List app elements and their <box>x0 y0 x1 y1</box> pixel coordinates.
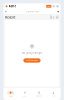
button[interactable]: Search <box>51 5 55 7</box>
staticText: Create project <box>26 60 38 61</box>
button[interactable]: Docs <box>18 89 32 99</box>
button[interactable]: See all <box>50 16 59 19</box>
staticText: Home <box>9 95 13 97</box>
staticText: Docs <box>23 95 27 97</box>
button[interactable]: New <box>46 5 51 8</box>
staticText: You <box>52 95 55 97</box>
button[interactable]: Create project <box>23 58 41 63</box>
button[interactable]: Home <box>3 89 18 99</box>
staticText: No projects yet <box>21 51 42 55</box>
staticText: Acme <box>9 4 17 8</box>
button[interactable]: Account <box>55 5 59 7</box>
staticText: Recent <box>5 16 15 19</box>
button[interactable]: Search <box>32 89 46 99</box>
button[interactable]: You <box>46 89 60 99</box>
staticText: See all <box>50 16 59 19</box>
staticText: New <box>47 5 50 7</box>
staticText: Projects / Overview <box>25 11 38 13</box>
